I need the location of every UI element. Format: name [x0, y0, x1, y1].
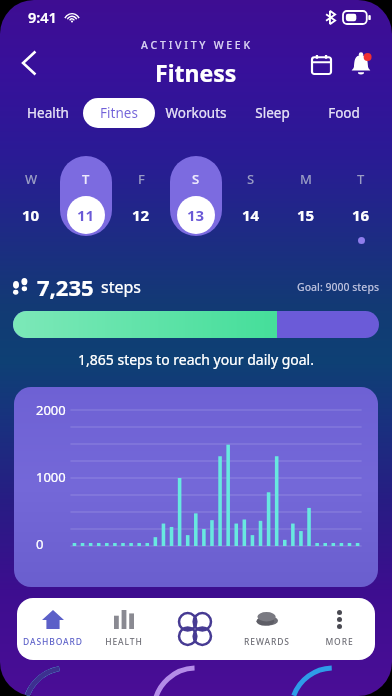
staticText: REWARDS — [244, 636, 290, 648]
staticText: 14 — [242, 205, 260, 225]
staticText: Health — [27, 104, 69, 122]
button[interactable]: Notifications — [344, 47, 378, 81]
staticText: 1000 — [36, 468, 66, 486]
button[interactable]: REWARDS — [231, 598, 303, 660]
staticText: 9:41 — [28, 7, 57, 27]
button[interactable]: S — [168, 154, 223, 250]
staticText: Fitness — [155, 57, 237, 88]
button[interactable]: Fitness — [83, 98, 155, 128]
staticText: 10 — [22, 205, 40, 225]
staticText: 2000 — [36, 401, 66, 419]
button[interactable]: MORE — [303, 598, 375, 660]
button[interactable]: HEALTH — [88, 598, 159, 660]
staticText: Workouts — [165, 104, 227, 122]
staticText: Goal: 9000 steps — [297, 280, 379, 294]
staticText: Fitness — [99, 104, 139, 122]
staticText: Sleep — [255, 104, 290, 122]
staticText: 0 — [36, 535, 44, 553]
staticText: Food — [328, 104, 360, 122]
button[interactable]: 2000 — [14, 387, 378, 587]
button[interactable]: F — [113, 154, 168, 250]
button[interactable]: Calendar — [304, 47, 338, 81]
button[interactable]: W — [4, 154, 58, 250]
staticText: W — [25, 170, 38, 188]
staticText: steps — [101, 276, 141, 298]
staticText: 16 — [352, 205, 370, 225]
staticText: S — [192, 170, 200, 188]
staticText: DASHBOARD — [23, 636, 83, 648]
staticText: MORE — [325, 636, 354, 648]
button[interactable]: Workouts — [161, 98, 231, 128]
button[interactable]: DASHBOARD — [17, 598, 88, 660]
button[interactable]: Health — [23, 98, 73, 128]
button[interactable]: S — [223, 154, 278, 250]
staticText: M — [300, 170, 312, 188]
staticText: 1,865 steps to reach your daily goal. — [13, 350, 379, 369]
staticText: S — [247, 170, 255, 188]
staticText: A C T I V I T Y W E E K — [141, 38, 251, 52]
staticText: F — [138, 170, 145, 188]
button[interactable]: Activity — [159, 598, 231, 660]
staticText: 7,235 — [37, 272, 94, 302]
staticText: 12 — [132, 205, 150, 225]
button[interactable]: M — [278, 154, 333, 250]
staticText: 15 — [297, 205, 315, 225]
staticText: 13 — [187, 205, 205, 225]
button[interactable]: Food — [324, 98, 364, 128]
button[interactable]: T — [58, 154, 113, 250]
staticText: T — [82, 170, 90, 188]
staticText: T — [357, 170, 365, 188]
button[interactable]: Sleep — [251, 98, 294, 128]
button[interactable]: Back — [6, 40, 52, 86]
staticText: HEALTH — [105, 636, 143, 648]
staticText: 11 — [77, 205, 95, 225]
button[interactable]: T — [333, 154, 388, 250]
